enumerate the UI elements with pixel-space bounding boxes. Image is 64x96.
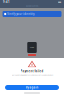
staticText: We couldn't complete this transaction. P… bbox=[11, 74, 52, 76]
button[interactable]: Try again bbox=[5, 85, 59, 90]
staticText: 9:41 bbox=[3, 0, 10, 4]
staticText: Try again bbox=[25, 86, 38, 89]
staticText: Accounts bbox=[26, 4, 38, 8]
staticText: ●●● bbox=[58, 1, 61, 3]
staticText: Payment failed bbox=[20, 69, 43, 73]
staticText: CARD bbox=[30, 47, 34, 48]
staticText: Verify your identity bbox=[7, 12, 34, 16]
